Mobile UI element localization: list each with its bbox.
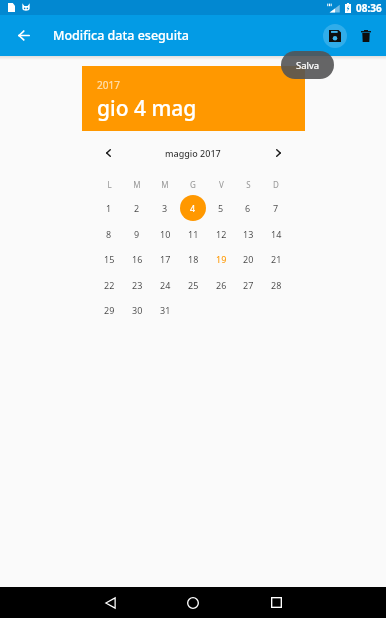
- button[interactable]: Home: [169, 587, 217, 618]
- button[interactable]: 19: [208, 246, 234, 272]
- button[interactable]: 6: [235, 195, 261, 221]
- staticText: maggio 2017: [165, 147, 221, 159]
- button[interactable]: 29: [96, 297, 122, 323]
- staticText: 23: [132, 279, 143, 291]
- button[interactable]: 7: [263, 195, 289, 221]
- button[interactable]: 26: [208, 272, 234, 298]
- staticText: Modifica data eseguita: [53, 27, 190, 44]
- staticText: 20: [243, 253, 254, 265]
- staticText: 14: [271, 228, 282, 240]
- staticText: 17: [160, 253, 171, 265]
- button[interactable]: Recents: [252, 587, 300, 618]
- button[interactable]: 18: [180, 246, 206, 272]
- button[interactable]: Back: [0, 15, 47, 56]
- staticText: 12: [216, 228, 227, 240]
- button[interactable]: 28: [263, 272, 289, 298]
- button[interactable]: 16: [124, 246, 150, 272]
- button[interactable]: 22: [96, 272, 122, 298]
- button[interactable]: 11: [180, 221, 206, 247]
- button[interactable]: 27: [235, 272, 261, 298]
- button[interactable]: 1: [96, 195, 122, 221]
- staticText: 24: [160, 279, 171, 291]
- staticText: M: [161, 179, 169, 190]
- button[interactable]: Next month: [266, 141, 290, 165]
- staticText: 26: [216, 279, 227, 291]
- staticText: 28: [271, 279, 282, 291]
- staticText: 15: [104, 253, 115, 265]
- button[interactable]: 10: [152, 221, 178, 247]
- button[interactable]: 3: [152, 195, 178, 221]
- button[interactable]: Delete: [350, 15, 381, 56]
- button[interactable]: 15: [96, 246, 122, 272]
- button[interactable]: 24: [152, 272, 178, 298]
- staticText: 25: [188, 279, 199, 291]
- staticText: 1: [106, 202, 112, 214]
- staticText: Salva: [296, 59, 320, 72]
- staticText: 16: [132, 253, 143, 265]
- button[interactable]: Salva: [281, 51, 334, 79]
- button[interactable]: 9: [124, 221, 150, 247]
- button[interactable]: 13: [235, 221, 261, 247]
- staticText: 2: [134, 202, 140, 214]
- button[interactable]: Back: [86, 587, 134, 618]
- staticText: 21: [271, 253, 282, 265]
- staticText: 3: [162, 202, 168, 214]
- staticText: 2017: [97, 78, 120, 92]
- button[interactable]: Previous month: [96, 141, 120, 165]
- staticText: 10: [160, 228, 171, 240]
- button[interactable]: 8: [96, 221, 122, 247]
- staticText: 22: [104, 279, 115, 291]
- staticText: 29: [104, 304, 115, 316]
- staticText: M: [133, 179, 141, 190]
- staticText: G: [190, 179, 196, 190]
- staticText: 4: [190, 202, 196, 214]
- staticText: V: [219, 179, 224, 190]
- staticText: 8: [106, 228, 112, 240]
- button[interactable]: 20: [235, 246, 261, 272]
- button[interactable]: 30: [124, 297, 150, 323]
- staticText: 9: [134, 228, 140, 240]
- staticText: D: [273, 179, 279, 190]
- staticText: 30: [132, 304, 143, 316]
- button[interactable]: 25: [180, 272, 206, 298]
- button[interactable]: 14: [263, 221, 289, 247]
- staticText: L: [107, 179, 112, 190]
- staticText: 5: [218, 202, 224, 214]
- staticText: S: [246, 179, 251, 190]
- button[interactable]: 2017: [82, 66, 305, 131]
- staticText: gio 4 mag: [97, 94, 197, 123]
- button[interactable]: 31: [152, 297, 178, 323]
- button[interactable]: 17: [152, 246, 178, 272]
- button[interactable]: 12: [208, 221, 234, 247]
- button[interactable]: 23: [124, 272, 150, 298]
- button[interactable]: Save: [319, 15, 350, 56]
- button[interactable]: 5: [208, 195, 234, 221]
- staticText: 7: [273, 202, 279, 214]
- staticText: 31: [160, 304, 171, 316]
- staticText: 6: [245, 202, 251, 214]
- staticText: 13: [243, 228, 254, 240]
- staticText: 27: [243, 279, 254, 291]
- staticText: 18: [188, 253, 199, 265]
- button[interactable]: 4: [180, 195, 206, 221]
- button[interactable]: 2: [124, 195, 150, 221]
- staticText: 11: [188, 228, 199, 240]
- button[interactable]: 21: [263, 246, 289, 272]
- staticText: 19: [216, 253, 227, 265]
- staticText: 08:36: [356, 1, 382, 15]
